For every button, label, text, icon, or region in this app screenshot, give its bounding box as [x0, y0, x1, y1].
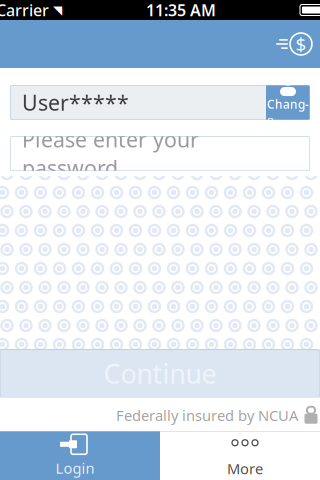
button[interactable]: Please enter your password — [10, 136, 310, 171]
staticText: Login — [55, 458, 94, 478]
staticText: Federally insured by NCUA — [116, 405, 298, 425]
button[interactable]: Continue — [0, 349, 320, 397]
staticText: More — [227, 459, 263, 478]
staticText: Change — [267, 96, 309, 128]
button[interactable]: User***** — [10, 85, 310, 120]
staticText: ◥ — [53, 3, 62, 17]
button[interactable]: More — [160, 431, 320, 480]
staticText: Carrier — [0, 0, 49, 21]
staticText: Please enter your password — [22, 125, 199, 182]
staticText: 11:35 AM — [146, 0, 216, 21]
staticText: User***** — [22, 88, 129, 117]
staticText: $ — [295, 32, 306, 56]
button[interactable]: Login — [0, 431, 160, 480]
button[interactable]: Account — [266, 24, 320, 64]
staticText: Continue — [103, 356, 216, 391]
